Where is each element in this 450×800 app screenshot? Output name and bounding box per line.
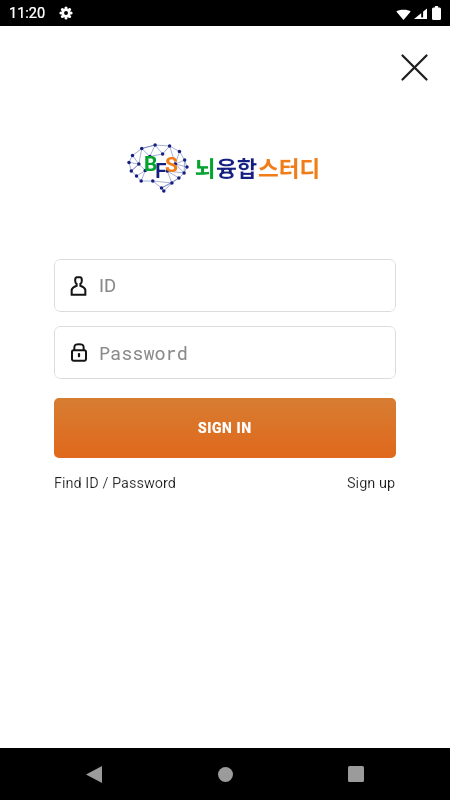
button[interactable]: Sign up bbox=[347, 475, 396, 492]
staticText: Find ID / Password bbox=[54, 475, 177, 492]
staticText: SIGN IN bbox=[198, 420, 252, 436]
staticText: Password bbox=[99, 341, 188, 365]
staticText: 융합 bbox=[216, 151, 258, 184]
staticText: F bbox=[155, 159, 167, 184]
staticText: 11:20 bbox=[9, 5, 46, 22]
staticText: B bbox=[144, 152, 158, 177]
button[interactable]: Close bbox=[390, 43, 438, 91]
button[interactable]: Find ID / Password bbox=[54, 475, 177, 492]
button[interactable]: Back bbox=[68, 748, 120, 800]
staticText: ID bbox=[99, 275, 117, 297]
button[interactable]: SIGN IN bbox=[54, 398, 396, 458]
staticText: S bbox=[165, 153, 178, 178]
button[interactable]: Recents bbox=[330, 748, 382, 800]
button[interactable]: ID bbox=[54, 259, 396, 312]
button[interactable]: Password bbox=[54, 326, 396, 379]
staticText: 스터디 bbox=[258, 151, 321, 184]
staticText: Sign up bbox=[347, 475, 396, 492]
staticText: 뇌 bbox=[195, 151, 216, 184]
button[interactable]: Home bbox=[199, 748, 251, 800]
